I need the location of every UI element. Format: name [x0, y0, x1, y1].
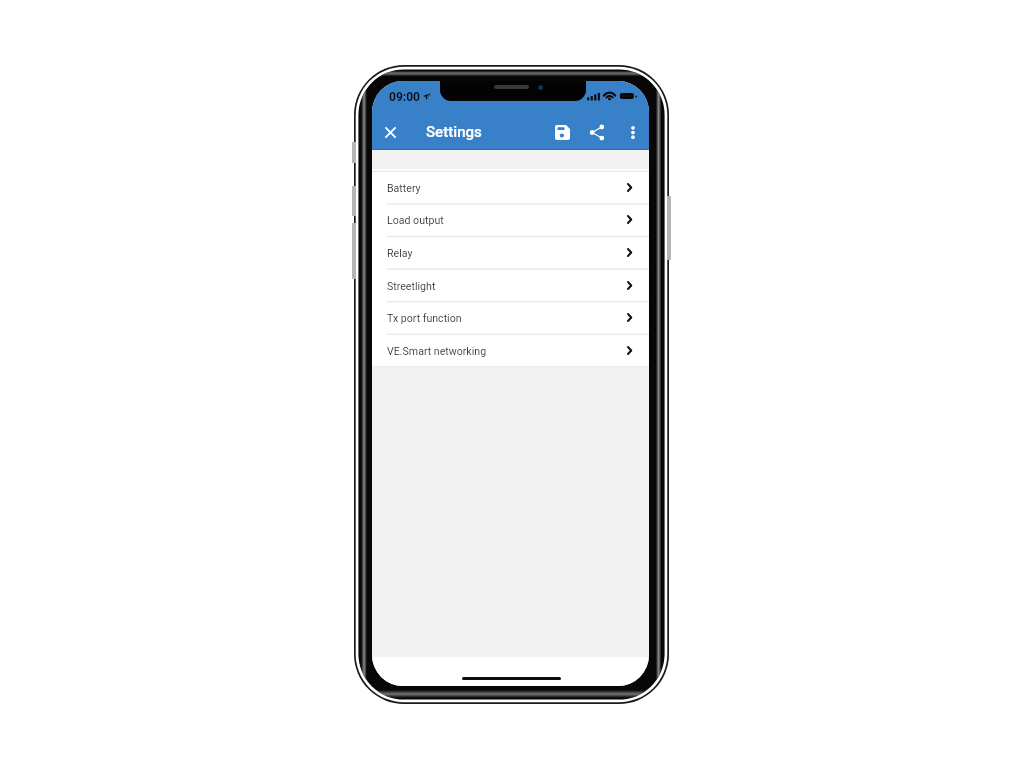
- button[interactable]: VE.Smart networking: [372, 335, 649, 368]
- button[interactable]: Save: [546, 116, 578, 148]
- staticText: VE.Smart networking: [387, 345, 487, 357]
- staticText: Settings: [426, 123, 482, 141]
- button[interactable]: More options: [618, 117, 648, 147]
- staticText: Streetlight: [387, 280, 436, 292]
- button[interactable]: Close: [375, 117, 405, 147]
- button[interactable]: Share: [581, 116, 613, 148]
- button[interactable]: Relay: [372, 237, 649, 270]
- staticText: Battery: [387, 182, 421, 194]
- button[interactable]: Tx port function: [372, 302, 649, 335]
- staticText: Load output: [387, 214, 444, 226]
- button[interactable]: Battery: [372, 172, 649, 205]
- button[interactable]: Load output: [372, 204, 649, 237]
- button[interactable]: Streetlight: [372, 270, 649, 303]
- staticText: Relay: [387, 247, 413, 259]
- staticText: 09:00: [389, 90, 420, 104]
- staticText: Tx port function: [387, 312, 462, 324]
